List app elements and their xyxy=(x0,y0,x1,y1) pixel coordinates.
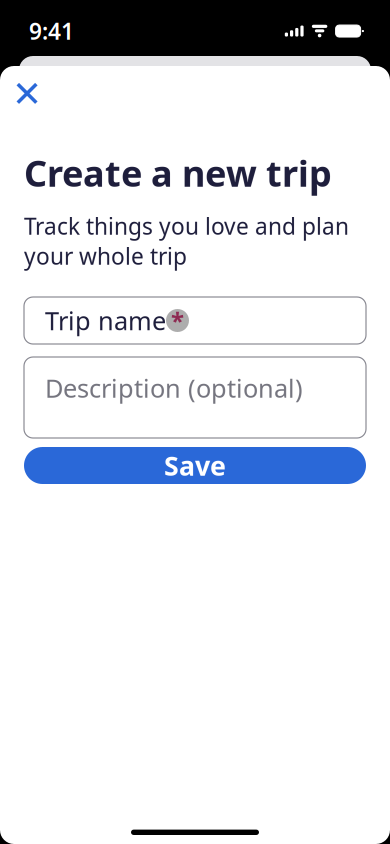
button[interactable]: Save xyxy=(24,447,366,484)
staticText: Description (optional) xyxy=(45,371,303,405)
button[interactable]: Close xyxy=(4,71,50,117)
staticText: Track things you love and plan your whol… xyxy=(24,211,349,271)
button[interactable]: Description (optional) xyxy=(24,357,366,438)
staticText: Trip name xyxy=(45,304,166,337)
staticText: Create a new trip xyxy=(24,149,332,197)
staticText: * xyxy=(171,305,184,336)
staticText: Save xyxy=(164,448,226,483)
staticText: 9:41 xyxy=(29,16,74,46)
button[interactable]: Trip name xyxy=(24,297,366,344)
staticText: ✕ xyxy=(12,74,42,114)
